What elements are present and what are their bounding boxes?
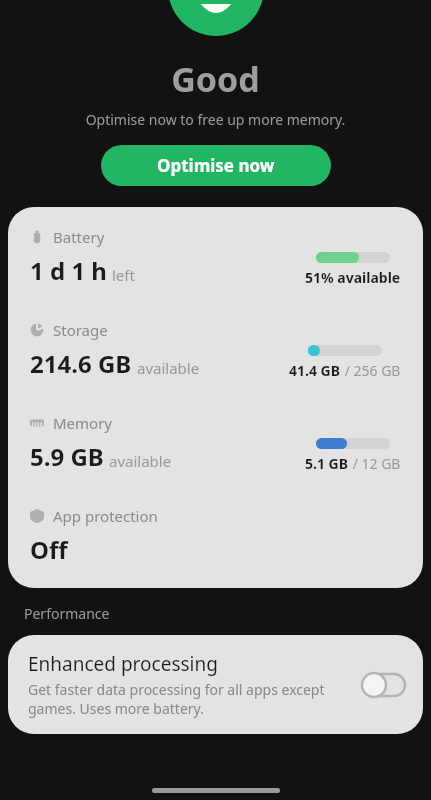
staticText: Memory [53,413,113,433]
button[interactable]: Optimise now [101,145,331,186]
staticText: Enhanced processing [28,651,218,677]
staticText: 51% available [305,268,401,287]
button[interactable]: Enhanced processing [8,635,423,734]
staticText: Get faster data processing for all apps … [28,680,355,718]
staticText: 214.6 GB [30,347,132,380]
staticText: Off [30,533,68,566]
staticText: / 12 GB [349,454,401,473]
staticText: Optimise now [157,154,275,177]
staticText: Battery [53,227,105,247]
staticText: available [109,451,172,471]
staticText: 1 d 1 h [30,254,107,287]
staticText: / 256 GB [341,361,401,380]
staticText: 5.9 GB [30,440,104,473]
staticText: left [112,265,135,285]
button[interactable]: Battery [8,207,423,588]
staticText: Good [0,56,431,102]
staticText: Optimise now to free up more memory. [0,110,431,129]
staticText: 5.1 GB [305,454,349,473]
staticText: Storage [53,320,108,340]
staticText: App protection [53,506,158,526]
staticText: Performance [24,604,110,623]
button[interactable]: Enhanced processing toggle [361,672,407,698]
staticText: 41.4 GB [289,361,341,380]
staticText: available [137,358,200,378]
